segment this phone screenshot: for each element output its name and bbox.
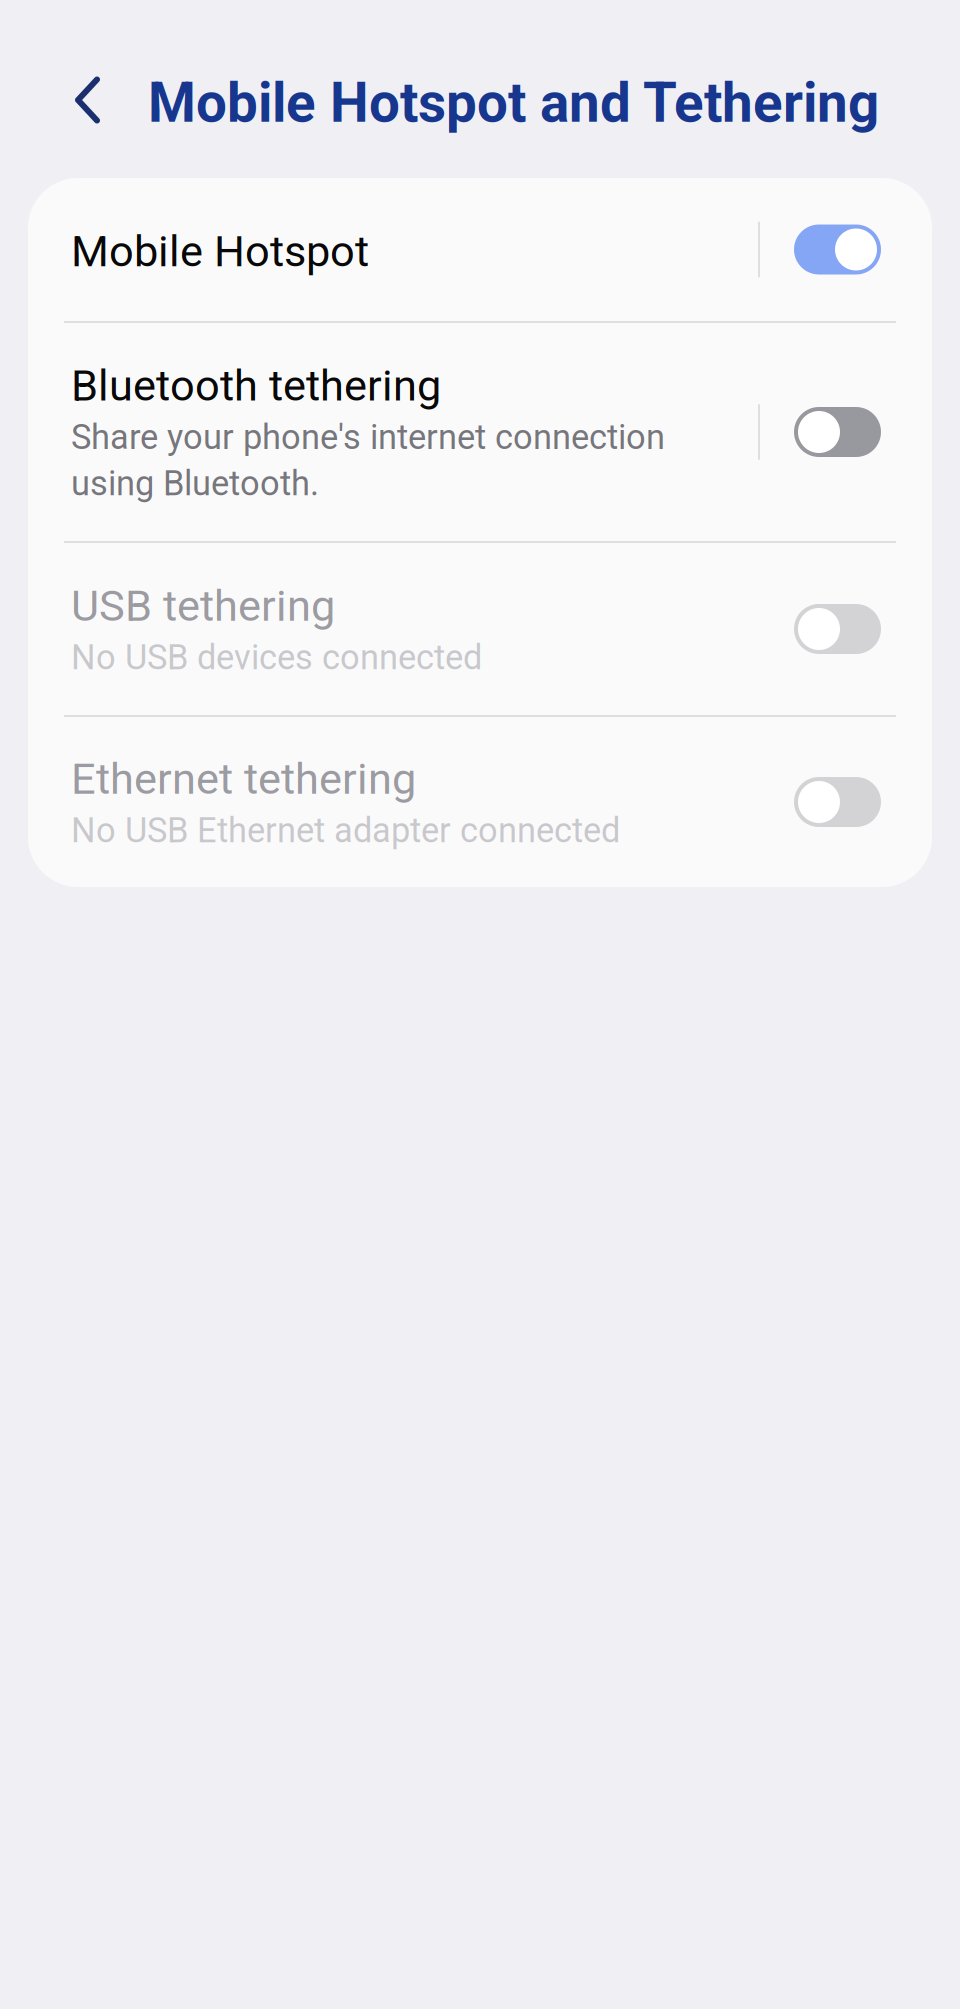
button[interactable]: Back — [78, 50, 148, 150]
staticText: USB tethering — [71, 580, 335, 631]
staticText: Mobile Hotspot and Tethering — [148, 71, 879, 135]
button[interactable]: Bluetooth tethering — [28, 323, 932, 541]
staticText: Share your phone's internet connection — [71, 417, 665, 457]
staticText: No USB Ethernet adapter connected — [71, 810, 620, 850]
button[interactable]: Mobile Hotspot — [28, 178, 932, 321]
staticText: Ethernet tethering — [71, 753, 416, 804]
staticText: Mobile Hotspot — [71, 226, 369, 277]
staticText: No USB devices connected — [71, 637, 482, 677]
staticText: Bluetooth tethering — [71, 360, 441, 411]
button[interactable]: USB tethering — [28, 543, 932, 715]
button[interactable]: Ethernet tethering — [28, 717, 932, 887]
staticText: using Bluetooth. — [71, 463, 319, 504]
